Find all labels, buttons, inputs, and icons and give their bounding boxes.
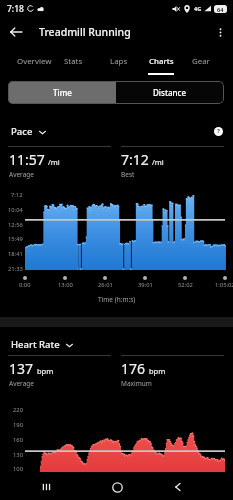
staticText: 12:56 xyxy=(8,221,23,229)
button[interactable]: Overview xyxy=(11,48,57,76)
staticText: Charts xyxy=(149,56,174,67)
staticText: bpm xyxy=(37,366,54,376)
button[interactable]: Laps xyxy=(98,48,140,76)
staticText: 7:18 xyxy=(7,3,24,15)
staticText: 15:49 xyxy=(8,235,23,243)
staticText: Treadmill Running xyxy=(39,25,131,39)
staticText: Time xyxy=(53,87,72,98)
staticText: Pace xyxy=(11,125,33,138)
staticText: 64 xyxy=(217,6,224,13)
staticText: Best xyxy=(121,170,135,179)
button[interactable]: Heart Rate xyxy=(9,336,75,353)
staticText: 26:01 xyxy=(98,281,113,289)
staticText: 21:33 xyxy=(8,265,23,273)
staticText: 137 xyxy=(9,359,34,378)
staticText: 7:12 xyxy=(121,150,149,169)
button[interactable]: Pace xyxy=(9,123,48,140)
staticText: Heart Rate xyxy=(11,338,60,351)
staticText: 190 xyxy=(13,421,23,429)
staticText: ? xyxy=(217,127,220,135)
staticText: 1:05:02 xyxy=(215,281,233,289)
button[interactable]: Back xyxy=(2,18,30,46)
button[interactable]: Recent apps xyxy=(34,475,58,499)
staticText: Maximum xyxy=(121,379,152,388)
staticText: 10:04 xyxy=(8,206,23,214)
staticText: Laps xyxy=(110,56,128,67)
staticText: 52:02 xyxy=(178,281,193,289)
button[interactable]: Gear xyxy=(181,48,221,76)
staticText: Stats xyxy=(64,56,83,67)
staticText: 13:00 xyxy=(58,281,73,289)
button[interactable]: Help xyxy=(211,124,225,138)
staticText: 176 xyxy=(121,359,146,378)
staticText: /mi xyxy=(48,157,60,167)
button[interactable]: Home xyxy=(105,475,129,499)
staticText: Distance xyxy=(153,87,187,98)
staticText: Gear xyxy=(192,56,210,67)
button[interactable]: Distance xyxy=(116,81,224,104)
staticText: Average xyxy=(9,170,34,179)
button[interactable]: Time xyxy=(8,81,116,104)
staticText: Overview xyxy=(17,56,52,67)
staticText: 39:01 xyxy=(138,281,153,289)
button[interactable]: Charts xyxy=(141,48,181,76)
staticText: bpm xyxy=(149,366,166,376)
button[interactable]: Back xyxy=(166,475,190,499)
staticText: Time (h:m:s) xyxy=(98,295,136,304)
button[interactable]: More options xyxy=(207,19,233,45)
staticText: 11:57 xyxy=(9,150,45,169)
staticText: /mi xyxy=(152,157,164,167)
staticText: 130 xyxy=(13,451,23,459)
staticText: 18:41 xyxy=(8,250,23,258)
staticText: 220 xyxy=(13,406,23,414)
staticText: 7:12 xyxy=(11,191,23,199)
staticText: 4G xyxy=(194,5,202,12)
staticText: Average xyxy=(9,379,34,388)
button[interactable]: Stats xyxy=(52,48,94,76)
staticText: 100 xyxy=(13,465,23,473)
staticText: 0:00 xyxy=(19,281,31,289)
staticText: 160 xyxy=(13,436,23,444)
